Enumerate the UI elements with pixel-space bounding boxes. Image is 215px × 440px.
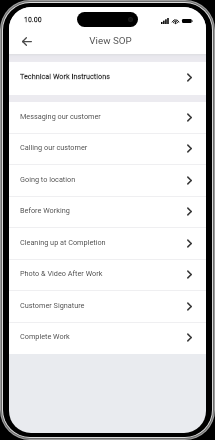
button[interactable]: Before Working (9, 197, 206, 228)
button[interactable]: Customer Signature (9, 291, 206, 323)
button[interactable]: Cleaning up at Completion (9, 228, 206, 260)
staticText: Messaging our customer (20, 112, 101, 121)
button[interactable]: Going to location (9, 165, 206, 197)
staticText: View SOP (89, 35, 132, 46)
staticText: Going to location (20, 175, 76, 184)
staticText: Cleaning up at Completion (20, 238, 106, 247)
staticText: Complete Work (20, 332, 70, 341)
staticText: 10.00 (24, 16, 42, 24)
staticText: Technical Work Instructions (20, 72, 110, 81)
staticText: Customer Signature (20, 301, 85, 310)
button[interactable]: Calling our customer (9, 134, 206, 165)
staticText: Before Working (20, 206, 70, 215)
staticText: Calling our customer (20, 143, 88, 152)
button[interactable]: Back (17, 31, 37, 51)
staticText: Photo & Video After Work (20, 269, 103, 278)
button[interactable]: Technical Work Instructions (9, 62, 206, 95)
button[interactable]: Photo & Video After Work (9, 260, 206, 291)
button[interactable]: Complete Work (9, 323, 206, 354)
button[interactable]: Messaging our customer (9, 102, 206, 134)
